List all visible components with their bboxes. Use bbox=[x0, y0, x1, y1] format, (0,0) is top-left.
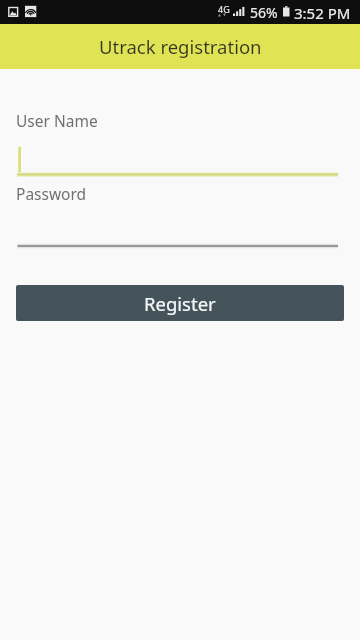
staticText: Utrack registration bbox=[99, 34, 262, 59]
staticText: Register bbox=[144, 291, 216, 316]
staticText: 4G bbox=[218, 3, 230, 15]
staticText: 56% bbox=[250, 3, 278, 22]
button[interactable]: Password input field bbox=[0, 180, 360, 252]
staticText: Password bbox=[16, 183, 87, 204]
button[interactable]: Register bbox=[16, 285, 344, 321]
staticText: 3:52 PM bbox=[294, 3, 351, 23]
staticText: User Name bbox=[16, 110, 98, 131]
button[interactable]: User Name input field bbox=[0, 104, 360, 180]
